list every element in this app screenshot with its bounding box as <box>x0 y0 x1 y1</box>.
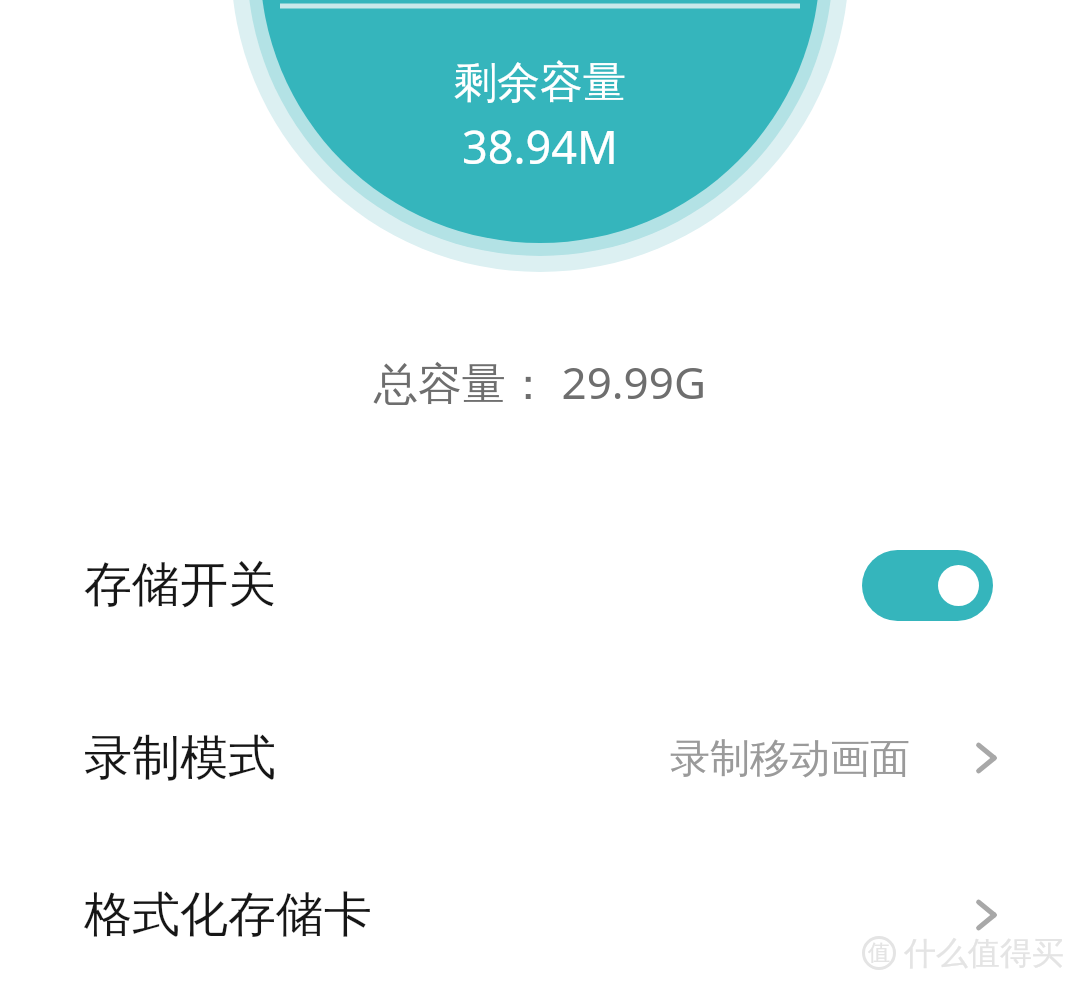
staticText: 总容量： 29.99G <box>374 352 706 412</box>
staticText: 值 <box>868 939 890 967</box>
staticText: 存储开关 <box>84 555 276 615</box>
button[interactable]: 存储开关 <box>862 550 993 621</box>
other: 更多 <box>954 883 1018 947</box>
staticText: 录制移动画面 <box>670 733 910 783</box>
staticText: 剩余容量 <box>454 56 626 110</box>
button[interactable]: 录制模式 <box>0 670 1080 845</box>
button[interactable]: 格式化存储卡 <box>0 845 1080 985</box>
staticText: 38.94M <box>462 116 618 177</box>
other: 更多 <box>954 726 1018 790</box>
button[interactable]: 存储开关 <box>0 500 1080 670</box>
staticText: 录制模式 <box>84 728 276 788</box>
staticText: 什么值得买 <box>904 933 1064 973</box>
staticText: 格式化存储卡 <box>84 885 372 945</box>
